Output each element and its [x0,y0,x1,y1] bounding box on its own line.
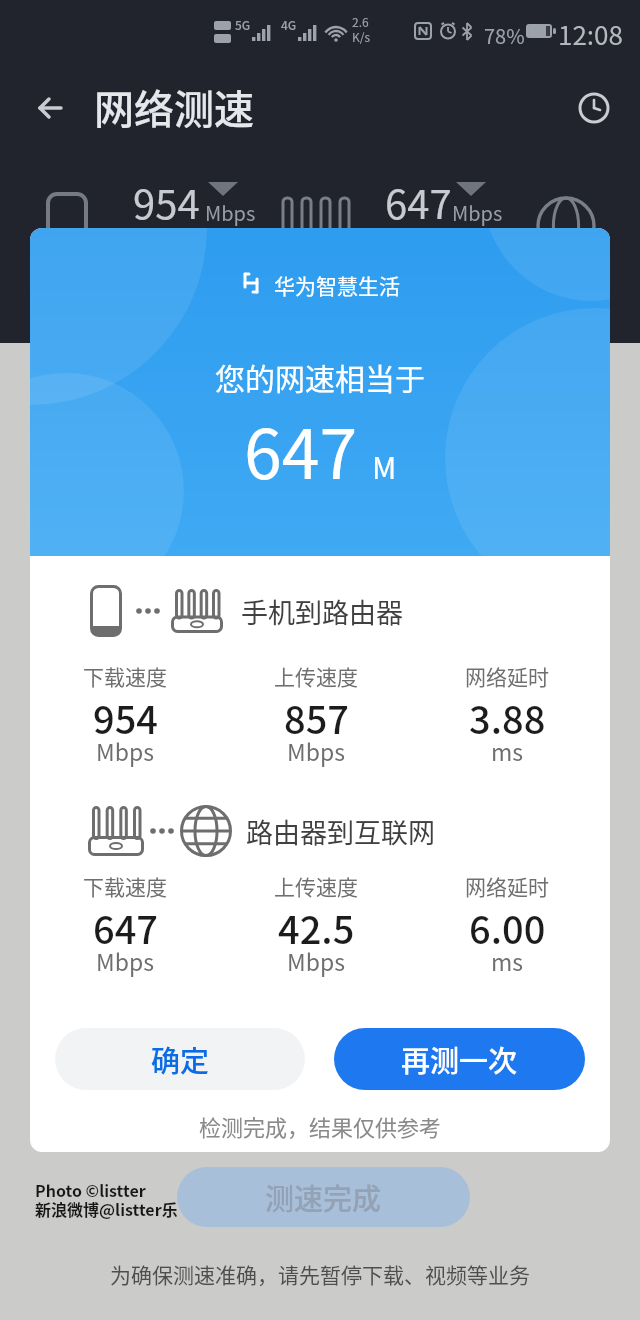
staticText: 42.5 [278,900,355,944]
staticText: 新浪微博@listter乐 [35,1197,178,1220]
staticText: Mbps [452,198,503,227]
staticText: 78% [484,21,525,50]
staticText: Mbps [96,734,154,760]
staticText: 下载速度 [83,661,167,685]
button[interactable] [36,94,64,122]
button[interactable]: 测速完成 [177,1167,470,1227]
staticText: 6.00 [469,900,546,944]
staticText: 再测一次 [401,1038,518,1080]
staticText: 为确保测速准确，请先暂停下载、视频等业务 [110,1259,530,1285]
button[interactable] [577,91,611,125]
staticText: 华为智慧生活 [274,270,400,296]
staticText: 您的网速相当于 [215,355,425,395]
staticText: 647 [385,173,452,231]
button[interactable]: 再测一次 [334,1028,585,1090]
staticText: ms [491,944,524,970]
staticText: 954 [133,173,200,231]
staticText: 测速完成 [265,1176,382,1218]
staticText: 网络测速 [94,78,254,136]
staticText: M [372,444,397,487]
staticText: 2.6 [352,13,369,30]
staticText: 路由器到互联网 [246,812,435,851]
staticText: 647 [93,900,158,944]
staticText: 4G [281,16,297,33]
staticText: 5G [235,16,251,33]
staticText: 857 [284,690,349,734]
button[interactable]: 确定 [55,1028,305,1090]
staticText: 3.88 [469,690,546,734]
staticText: ms [491,734,524,760]
staticText: Mbps [205,198,256,227]
staticText: Photo ©listter [35,1178,146,1201]
staticText: K/s [352,28,371,45]
staticText: 下载速度 [83,871,167,895]
staticText: 确定 [151,1038,210,1080]
staticText: 647 [244,400,358,498]
staticText: 上传速度 [274,661,358,685]
staticText: Mbps [96,944,154,970]
staticText: 954 [93,690,158,734]
staticText: 手机到路由器 [241,592,403,631]
staticText: 检测完成，结果仅供参考 [199,1110,442,1136]
staticText: Mbps [287,734,345,760]
staticText: 网络延时 [465,871,549,895]
staticText: 上传速度 [274,871,358,895]
staticText: 网络延时 [465,661,549,685]
staticText: Mbps [287,944,345,970]
staticText: 12:08 [558,15,623,53]
